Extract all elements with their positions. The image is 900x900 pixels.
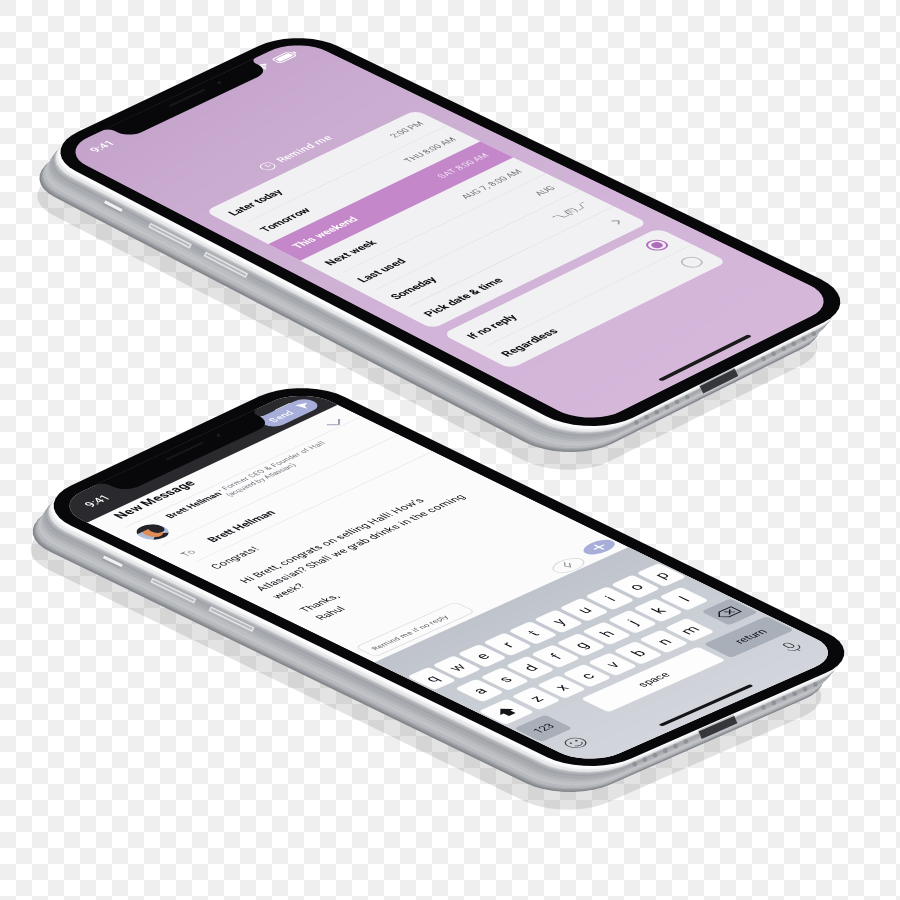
button[interactable]: Two iPhone mockups showing Remind me and… [0,0,900,900]
